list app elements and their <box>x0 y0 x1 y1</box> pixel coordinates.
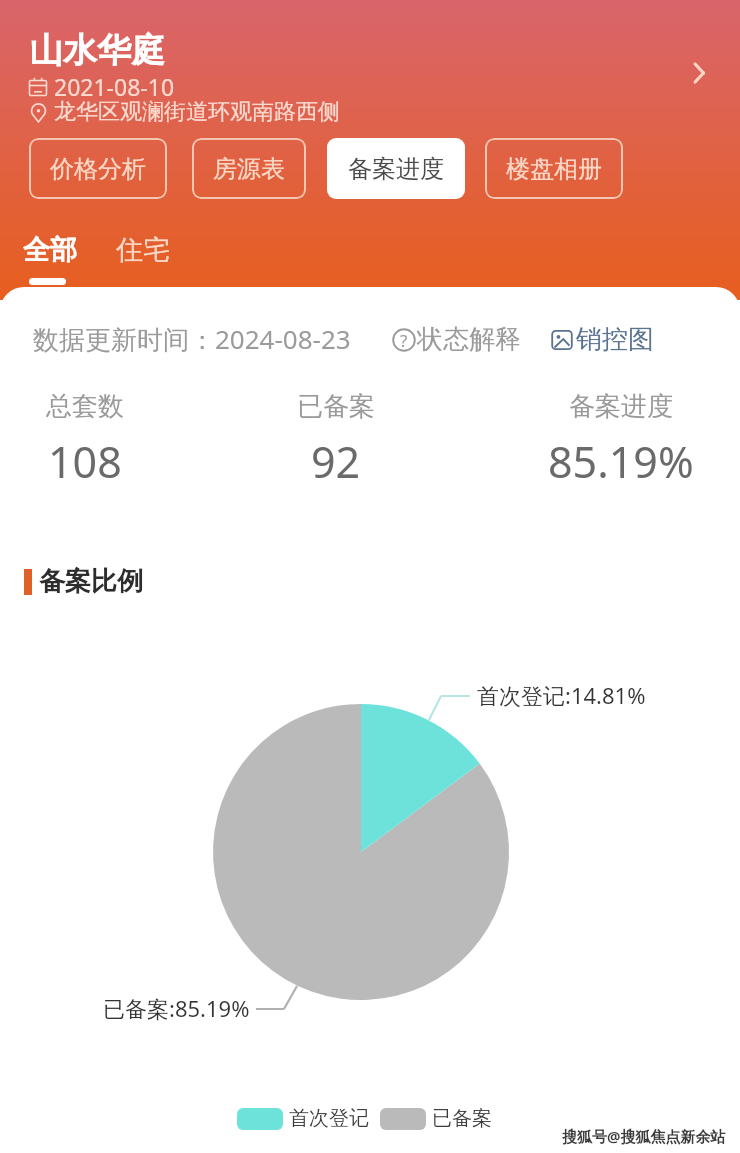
staticText: 楼盘相册 <box>506 154 602 184</box>
staticText: 108 <box>48 432 122 491</box>
staticText: 已备案:85.19% <box>103 993 250 1023</box>
staticText: 备案进度 <box>348 154 444 184</box>
staticText: 92 <box>311 432 361 491</box>
staticText: 状态解释 <box>417 323 521 356</box>
staticText: 备案进度 <box>569 390 673 423</box>
staticText: 全部 <box>23 233 77 267</box>
staticText: 龙华区观澜街道环观南路西侧 <box>54 98 340 126</box>
staticText: 2021-08-10 <box>54 71 175 102</box>
staticText: 销控图 <box>576 323 654 356</box>
staticText: 已备案 <box>432 1106 492 1131</box>
button[interactable]: 销控图 <box>551 323 654 356</box>
button[interactable]: 全部 <box>15 233 85 285</box>
button[interactable]: 房源表 <box>192 138 306 199</box>
staticText: 房源表 <box>213 154 285 184</box>
staticText: 备案比例 <box>39 565 143 598</box>
staticText: 首次登记:14.81% <box>477 680 646 710</box>
staticText: 山水华庭 <box>29 29 165 72</box>
button[interactable]: 楼盘相册 <box>485 138 623 199</box>
button[interactable]: 价格分析 <box>29 138 167 199</box>
button[interactable]: ? <box>392 323 521 356</box>
staticText: 搜狐号@搜狐焦点新余站 <box>562 1126 726 1146</box>
staticText: 首次登记 <box>289 1106 369 1131</box>
staticText: 已备案 <box>297 390 375 423</box>
staticText: 85.19% <box>548 432 694 491</box>
staticText: 价格分析 <box>50 154 146 184</box>
staticText: 住宅 <box>116 233 170 267</box>
staticText: 数据更新时间：2024-08-23 <box>33 321 351 357</box>
staticText: 总套数 <box>46 390 124 423</box>
button[interactable]: 住宅 <box>108 233 178 267</box>
button[interactable]: 备案进度 <box>327 138 465 199</box>
staticText: ? <box>400 329 408 352</box>
button[interactable]: 查看楼盘详情 <box>676 50 722 96</box>
